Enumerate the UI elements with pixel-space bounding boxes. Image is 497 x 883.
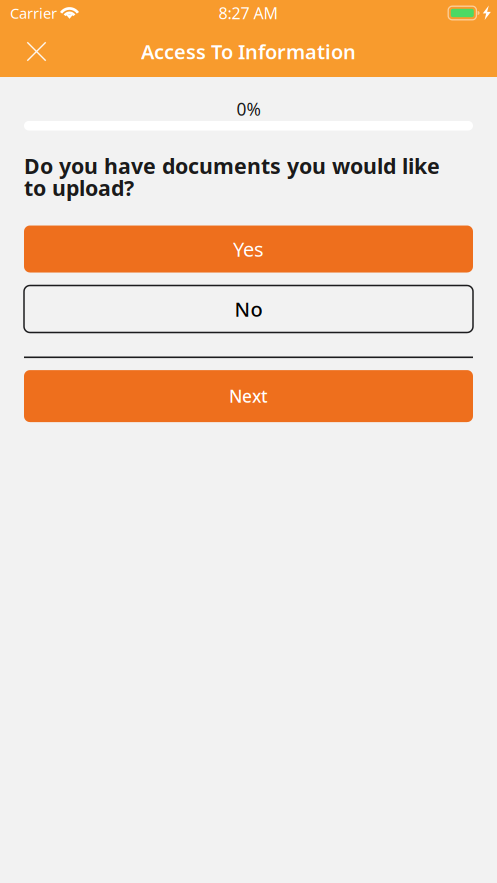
staticText: Yes <box>233 236 264 262</box>
staticText: Access To Information <box>141 38 356 65</box>
button[interactable]: Yes <box>24 225 473 272</box>
staticText: Carrier <box>10 3 57 23</box>
button[interactable]: Close <box>14 29 59 73</box>
staticText: 8:27 AM <box>218 2 278 24</box>
staticText: 0% <box>236 97 260 120</box>
staticText: No <box>234 296 262 322</box>
staticText: Next <box>229 385 268 408</box>
staticText: Do you have documents you would like <box>24 151 440 180</box>
staticText: to upload? <box>24 173 134 202</box>
button[interactable]: Next <box>24 370 473 422</box>
button[interactable]: No <box>24 285 473 332</box>
